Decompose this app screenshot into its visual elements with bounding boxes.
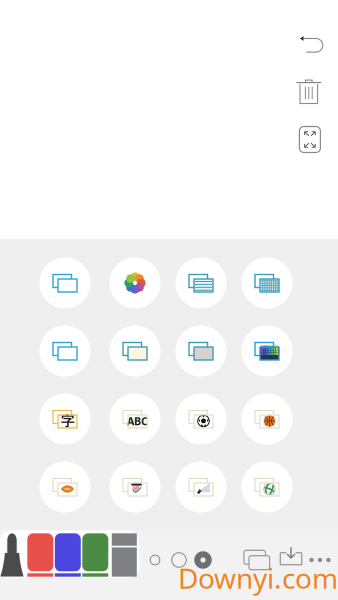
button[interactable]: Template <box>39 461 90 512</box>
button[interactable]: Template <box>175 325 226 376</box>
button[interactable]: Template <box>241 393 292 444</box>
staticText: 字 <box>61 413 74 429</box>
button[interactable]: Template <box>175 257 226 308</box>
button[interactable]: Template <box>109 325 160 376</box>
button[interactable]: Stroke width <box>142 547 168 573</box>
button[interactable]: Save <box>275 546 307 574</box>
button[interactable]: Template <box>241 257 292 308</box>
button[interactable]: Template <box>39 257 90 308</box>
button[interactable]: Template <box>175 393 226 444</box>
button[interactable]: Undo <box>289 29 331 61</box>
button[interactable]: Eraser <box>112 533 137 577</box>
button[interactable]: Duplicate <box>241 546 273 574</box>
button[interactable]: Full screen <box>289 122 331 156</box>
button[interactable]: Delete <box>288 75 330 107</box>
button[interactable]: Stroke width <box>190 547 216 573</box>
staticText: Downyi.com <box>178 559 338 597</box>
button[interactable]: Marker <box>27 533 53 577</box>
staticText: ABC <box>127 414 148 428</box>
button[interactable]: More <box>304 546 336 574</box>
button[interactable]: Template <box>241 325 292 376</box>
button[interactable]: Template <box>109 393 160 444</box>
button[interactable]: Marker <box>55 533 81 577</box>
button[interactable]: Template <box>175 461 226 512</box>
button[interactable]: Template <box>109 461 160 512</box>
button[interactable]: Marker <box>82 533 108 577</box>
button[interactable]: Template <box>109 257 160 308</box>
button[interactable]: Template <box>39 393 90 444</box>
button[interactable]: Stroke width <box>166 547 192 573</box>
button[interactable]: Template <box>241 461 292 512</box>
button[interactable]: Pen <box>0 533 24 577</box>
button[interactable]: Template <box>39 325 90 376</box>
